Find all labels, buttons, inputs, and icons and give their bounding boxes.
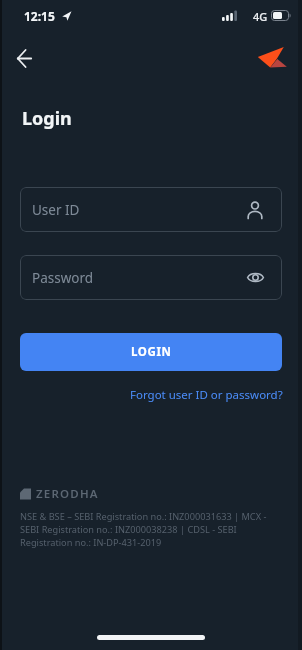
staticText: LOGIN — [131, 344, 172, 360]
staticText: 12:15 — [24, 8, 55, 24]
button[interactable]: Forgot user ID or password? — [130, 387, 283, 403]
staticText: 4G — [253, 9, 268, 24]
button[interactable]: User ID — [20, 187, 282, 232]
staticText: User ID — [32, 201, 80, 219]
button[interactable] — [8, 42, 40, 74]
staticText: NSE & BSE – SEBI Registration no.: INZ00… — [20, 510, 267, 549]
button[interactable]: LOGIN — [20, 333, 282, 371]
staticText: ZERODHA — [36, 486, 99, 502]
button[interactable]: Password — [20, 255, 282, 300]
staticText: Login — [22, 106, 72, 131]
staticText: Password — [32, 269, 94, 287]
